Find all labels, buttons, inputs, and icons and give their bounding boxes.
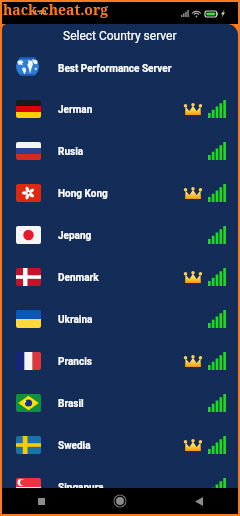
button[interactable]: Recents — [2, 488, 80, 514]
button[interactable]: Singapura — [2, 466, 238, 488]
button[interactable]: Hong Kong — [2, 172, 238, 214]
button[interactable]: Swedia — [2, 424, 238, 466]
staticText: Ukraina — [58, 314, 93, 326]
staticText: Swedia — [58, 440, 91, 452]
staticText: Brasil — [58, 398, 84, 410]
button[interactable]: Denmark — [2, 256, 238, 298]
staticText: Jepang — [58, 230, 92, 242]
staticText: Best Performance Server — [58, 63, 172, 75]
staticText: hack-cheat.org — [3, 0, 109, 19]
button[interactable]: Ukraina — [2, 298, 238, 340]
button[interactable]: Best Performance Server — [2, 45, 238, 88]
staticText: Prancis — [58, 356, 92, 368]
button[interactable]: Rusia — [2, 130, 238, 172]
staticText: Jerman — [58, 104, 93, 116]
button[interactable]: Jerman — [2, 88, 238, 130]
button[interactable]: Home — [80, 488, 159, 514]
staticText: Rusia — [58, 146, 84, 158]
staticText: 4:44 — [33, 9, 47, 17]
button[interactable]: Brasil — [2, 382, 238, 424]
button[interactable]: Back — [159, 488, 238, 514]
staticText: Hong Kong — [58, 188, 108, 200]
button[interactable]: Prancis — [2, 340, 238, 382]
staticText: Singapura — [58, 482, 104, 488]
staticText: Select Country server — [63, 29, 177, 43]
button[interactable]: Jepang — [2, 214, 238, 256]
staticText: Denmark — [58, 272, 99, 284]
